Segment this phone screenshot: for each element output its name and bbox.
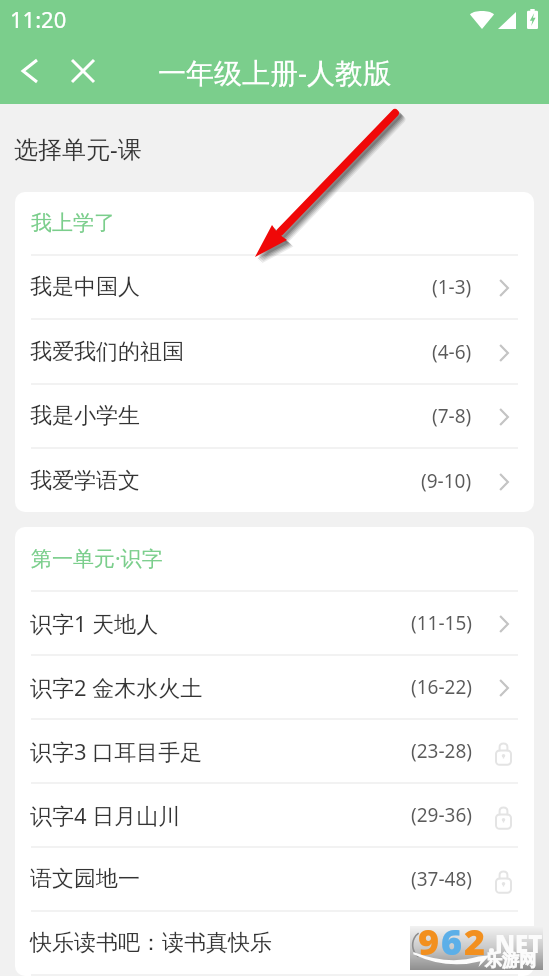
button[interactable]: 我是中国人	[15, 256, 534, 318]
staticText: (7-8)	[432, 403, 472, 429]
staticText: 我上学了	[31, 210, 115, 236]
staticText: 2	[464, 917, 486, 961]
button[interactable]: Close	[67, 55, 99, 87]
button[interactable]: 识字3 口耳目手足	[15, 720, 534, 782]
staticText: 选择单元-课	[14, 132, 142, 165]
button[interactable]: 识字2 金木水火土	[15, 656, 534, 718]
staticText: (9-10)	[421, 468, 472, 494]
staticText: 我爱我们的祖国	[30, 338, 184, 366]
staticText: 6	[441, 917, 463, 961]
staticText: (11-15)	[411, 610, 472, 636]
staticText: 我是中国人	[30, 273, 140, 301]
button[interactable]: 我是小学生	[15, 385, 534, 447]
button[interactable]: 我爱我们的祖国	[15, 320, 534, 383]
button[interactable]: 快乐读书吧：读书真快乐	[15, 912, 534, 974]
button[interactable]: 我爱学语文	[15, 449, 534, 512]
staticText: (23-28)	[411, 738, 472, 764]
staticText: 乐游网	[485, 950, 536, 971]
staticText: 识字2 金木水火土	[30, 672, 203, 702]
staticText: 第一单元·识字	[31, 544, 163, 573]
staticText: 9	[418, 917, 440, 961]
button[interactable]: 识字1 天地人	[15, 592, 534, 654]
staticText: (37-48)	[411, 866, 472, 892]
staticText: 快乐读书吧：读书真快乐	[30, 929, 272, 957]
staticText: 语文园地一	[30, 865, 140, 893]
button[interactable]: 识字4 日月山川	[15, 784, 534, 846]
staticText: 识字1 天地人	[30, 608, 159, 638]
staticText: 11:20	[10, 4, 67, 34]
staticText: 识字4 日月山川	[30, 800, 181, 830]
button[interactable]: Back	[14, 55, 46, 87]
staticText: 我爱学语文	[30, 467, 140, 495]
staticText: (29-36)	[411, 802, 472, 828]
button[interactable]: 语文园地一	[15, 848, 534, 910]
staticText: (1-3)	[432, 274, 472, 300]
staticText: 识字3 口耳目手足	[30, 736, 203, 766]
staticText: (16-22)	[411, 674, 472, 700]
staticText: 我是小学生	[30, 402, 140, 430]
staticText: (4-6)	[432, 339, 472, 365]
staticText: 一年级上册-人教版	[158, 53, 392, 91]
staticText: .NET	[488, 927, 543, 960]
